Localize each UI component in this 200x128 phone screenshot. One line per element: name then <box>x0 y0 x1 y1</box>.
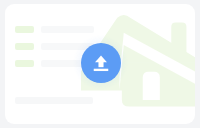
button[interactable]: Upload <box>81 43 121 83</box>
button[interactable] <box>15 43 94 50</box>
button[interactable] <box>15 26 94 33</box>
button[interactable] <box>15 60 94 67</box>
